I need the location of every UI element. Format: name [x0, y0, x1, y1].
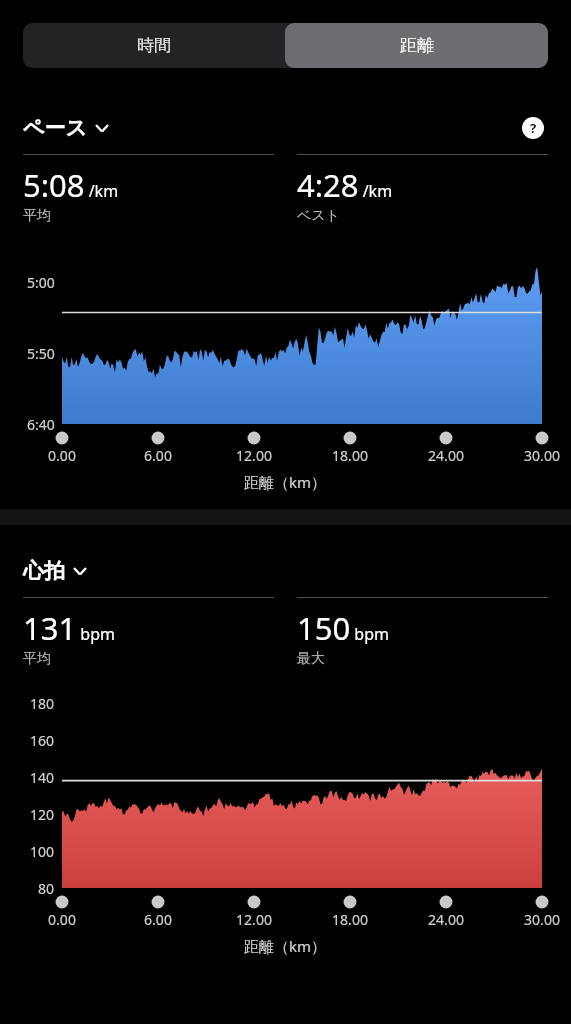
staticText: 12.00 [236, 910, 272, 929]
staticText: 131 bpm [23, 607, 115, 649]
button[interactable]: 距離 [285, 23, 548, 68]
staticText: 4:28 /km [297, 164, 393, 206]
staticText: 距離（km） [244, 936, 327, 956]
staticText: 心拍 [23, 558, 65, 584]
staticText: 140 [30, 768, 55, 787]
staticText: 18.00 [332, 910, 368, 929]
staticText: 24.00 [428, 446, 464, 465]
staticText: 6:40 [27, 415, 55, 434]
staticText: 5:00 [27, 273, 55, 292]
staticText: 時間 [137, 35, 171, 56]
staticText: 5:08 /km [23, 164, 119, 206]
staticText: 0.00 [48, 446, 76, 465]
staticText: 6.00 [144, 910, 172, 929]
button[interactable]: 心拍 [23, 558, 88, 584]
button[interactable]: 131 bpm [23, 597, 274, 668]
staticText: 5:50 [27, 344, 55, 363]
staticText: 0.00 [48, 910, 76, 929]
button[interactable]: 5:08 /km [23, 154, 274, 225]
staticText: 150 bpm [297, 607, 389, 649]
button[interactable]: ペース [23, 115, 110, 141]
button[interactable]: 4:28 /km [297, 154, 548, 225]
staticText: 6.00 [144, 446, 172, 465]
staticText: 30.00 [524, 446, 560, 465]
staticText: 80 [38, 879, 55, 898]
staticText: 平均 [23, 207, 51, 225]
staticText: 120 [30, 805, 55, 824]
staticText: 12.00 [236, 446, 272, 465]
staticText: 160 [30, 731, 55, 750]
staticText: ベスト [297, 207, 340, 225]
staticText: 最大 [297, 650, 325, 668]
button[interactable]: 150 bpm [297, 597, 548, 668]
staticText: 100 [30, 842, 55, 861]
staticText: 180 [30, 694, 55, 713]
staticText: 距離 [400, 35, 434, 56]
staticText: 18.00 [332, 446, 368, 465]
staticText: 距離（km） [244, 472, 327, 492]
button[interactable]: 時間 [23, 23, 285, 68]
staticText: ? [530, 119, 537, 137]
staticText: 30.00 [524, 910, 560, 929]
staticText: 平均 [23, 650, 51, 668]
staticText: 24.00 [428, 910, 464, 929]
staticText: ペース [23, 115, 87, 141]
button[interactable]: Help [518, 113, 548, 143]
